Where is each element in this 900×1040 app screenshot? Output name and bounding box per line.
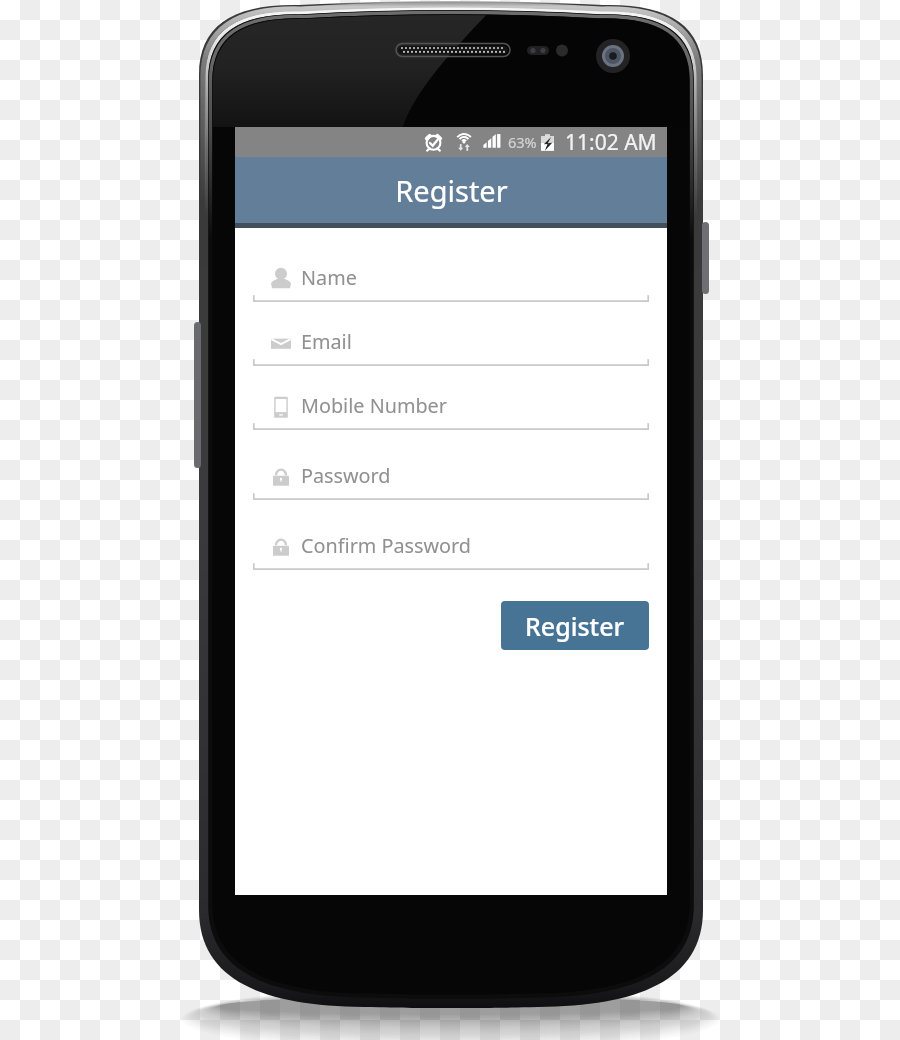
button[interactable]: Mobile Number	[235, 366, 667, 430]
staticText: Register	[525, 609, 625, 643]
staticText: Password	[301, 462, 391, 489]
staticText: Register	[395, 171, 508, 210]
button[interactable]: Confirm Password	[235, 500, 667, 570]
staticText: Confirm Password	[301, 532, 472, 559]
staticText: Name	[301, 264, 357, 291]
button[interactable]: Email	[235, 302, 667, 366]
button[interactable]: Name	[235, 237, 667, 302]
staticText: 11:02 AM	[565, 128, 657, 157]
staticText: Mobile Number	[301, 392, 447, 419]
staticText: Email	[301, 328, 352, 355]
button[interactable]: Register	[501, 601, 649, 650]
staticText: 63%	[508, 132, 537, 152]
button[interactable]: Password	[235, 430, 667, 500]
